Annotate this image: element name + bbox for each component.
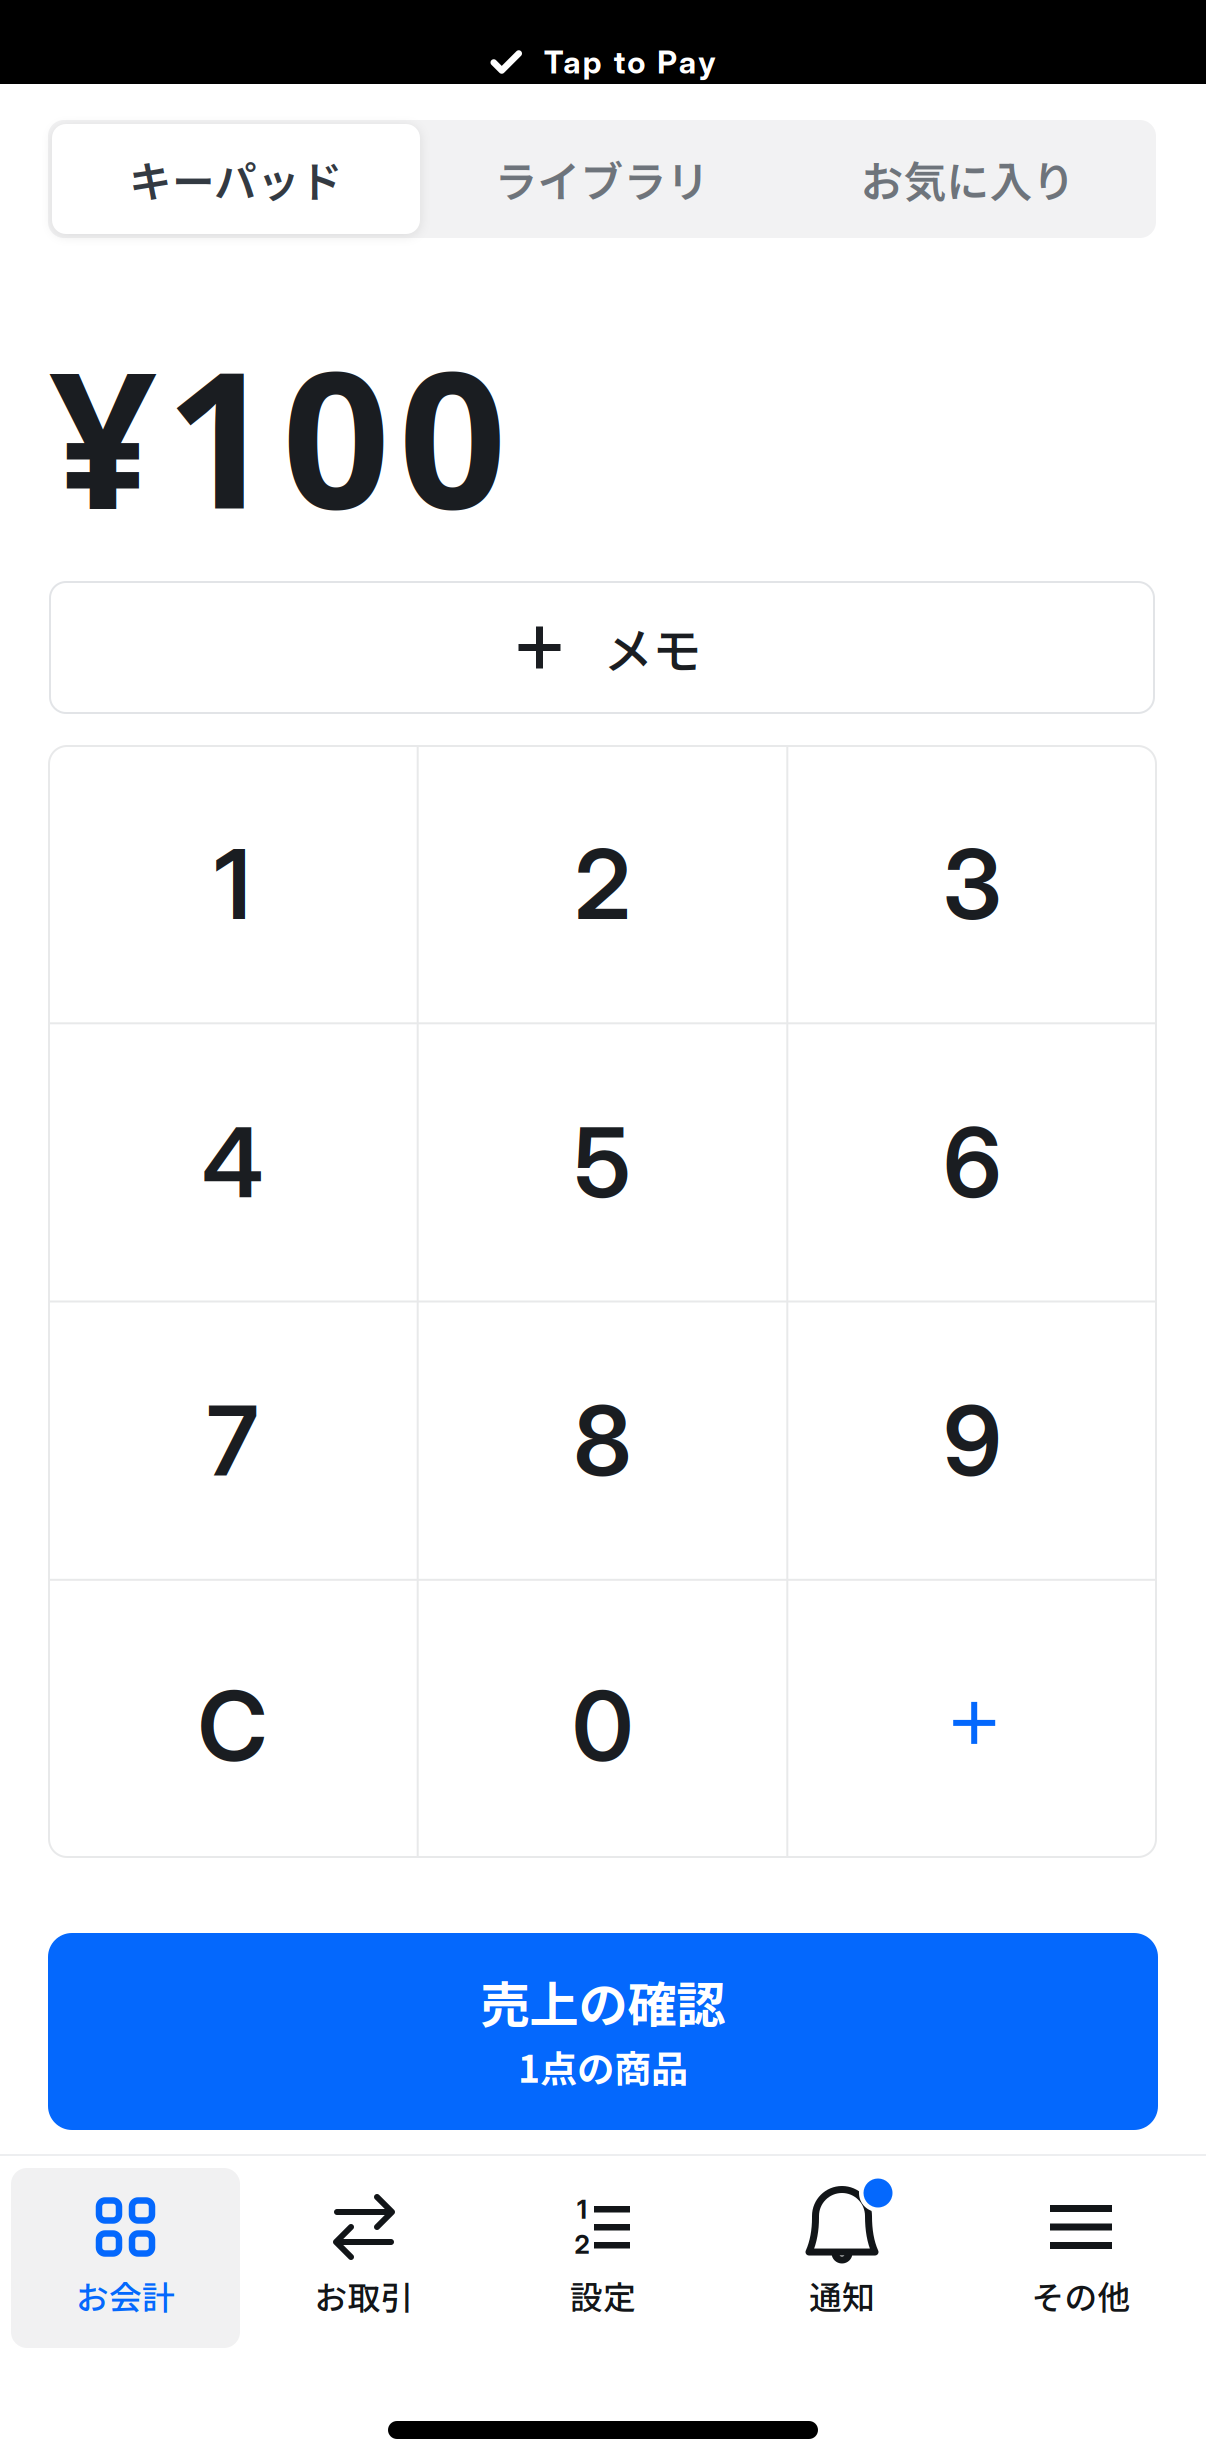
button[interactable]: C	[49, 1581, 417, 1857]
staticText: 4	[202, 1104, 264, 1220]
button[interactable]: 6	[788, 1024, 1156, 1300]
staticText: 2	[574, 2229, 589, 2260]
staticText: 通知	[809, 2272, 875, 2319]
button[interactable]: 4	[49, 1024, 417, 1300]
staticText: お会計	[76, 2272, 175, 2319]
staticText: その他	[1031, 2272, 1130, 2319]
staticText: C	[198, 1668, 268, 1784]
button[interactable]: 5	[418, 1024, 786, 1300]
button[interactable]: 2	[418, 746, 786, 1022]
staticText: キーパッド	[129, 148, 343, 210]
button[interactable]: Add item	[788, 1581, 1156, 1857]
staticText: 1点の商品	[518, 2039, 688, 2094]
button[interactable]: 7	[49, 1303, 417, 1579]
button[interactable]: Tap to Pay	[491, 43, 715, 81]
button[interactable]: 1	[49, 746, 417, 1022]
button[interactable]: ライブラリ	[418, 124, 786, 234]
staticText: 7	[207, 1382, 259, 1499]
staticText: お気に入り	[860, 148, 1075, 210]
staticText: 6	[943, 1104, 1001, 1220]
button[interactable]: 3	[788, 746, 1156, 1022]
button[interactable]: 9	[788, 1303, 1156, 1579]
button[interactable]: 売上の確認	[48, 1933, 1158, 2130]
staticText: 2	[574, 826, 630, 942]
button[interactable]: 8	[418, 1303, 786, 1579]
staticText: 0	[572, 1668, 633, 1784]
staticText: 1	[214, 826, 251, 942]
staticText: ¥100	[49, 306, 506, 564]
staticText: メモ	[603, 612, 701, 683]
staticText: 売上の確認	[480, 1966, 725, 2037]
button[interactable]: キーパッド	[52, 124, 420, 234]
staticText: 3	[943, 826, 1002, 942]
button[interactable]: お会計	[11, 2168, 240, 2348]
button[interactable]: 0	[418, 1581, 786, 1857]
button[interactable]: お気に入り	[784, 124, 1152, 234]
staticText: 8	[573, 1382, 631, 1499]
staticText: 1	[577, 2194, 587, 2225]
staticText: ライブラリ	[494, 148, 709, 210]
staticText: 9	[943, 1382, 1001, 1499]
button[interactable]: お取引	[249, 2168, 478, 2348]
staticText: Tap to Pay	[544, 43, 715, 81]
button[interactable]: その他	[966, 2168, 1195, 2348]
button[interactable]: 1	[488, 2168, 717, 2348]
staticText: お取引	[314, 2272, 413, 2319]
staticText: 5	[574, 1104, 631, 1220]
button[interactable]: 通知	[727, 2168, 956, 2348]
staticText: 設定	[570, 2272, 636, 2319]
button[interactable]: メモ	[49, 581, 1155, 714]
